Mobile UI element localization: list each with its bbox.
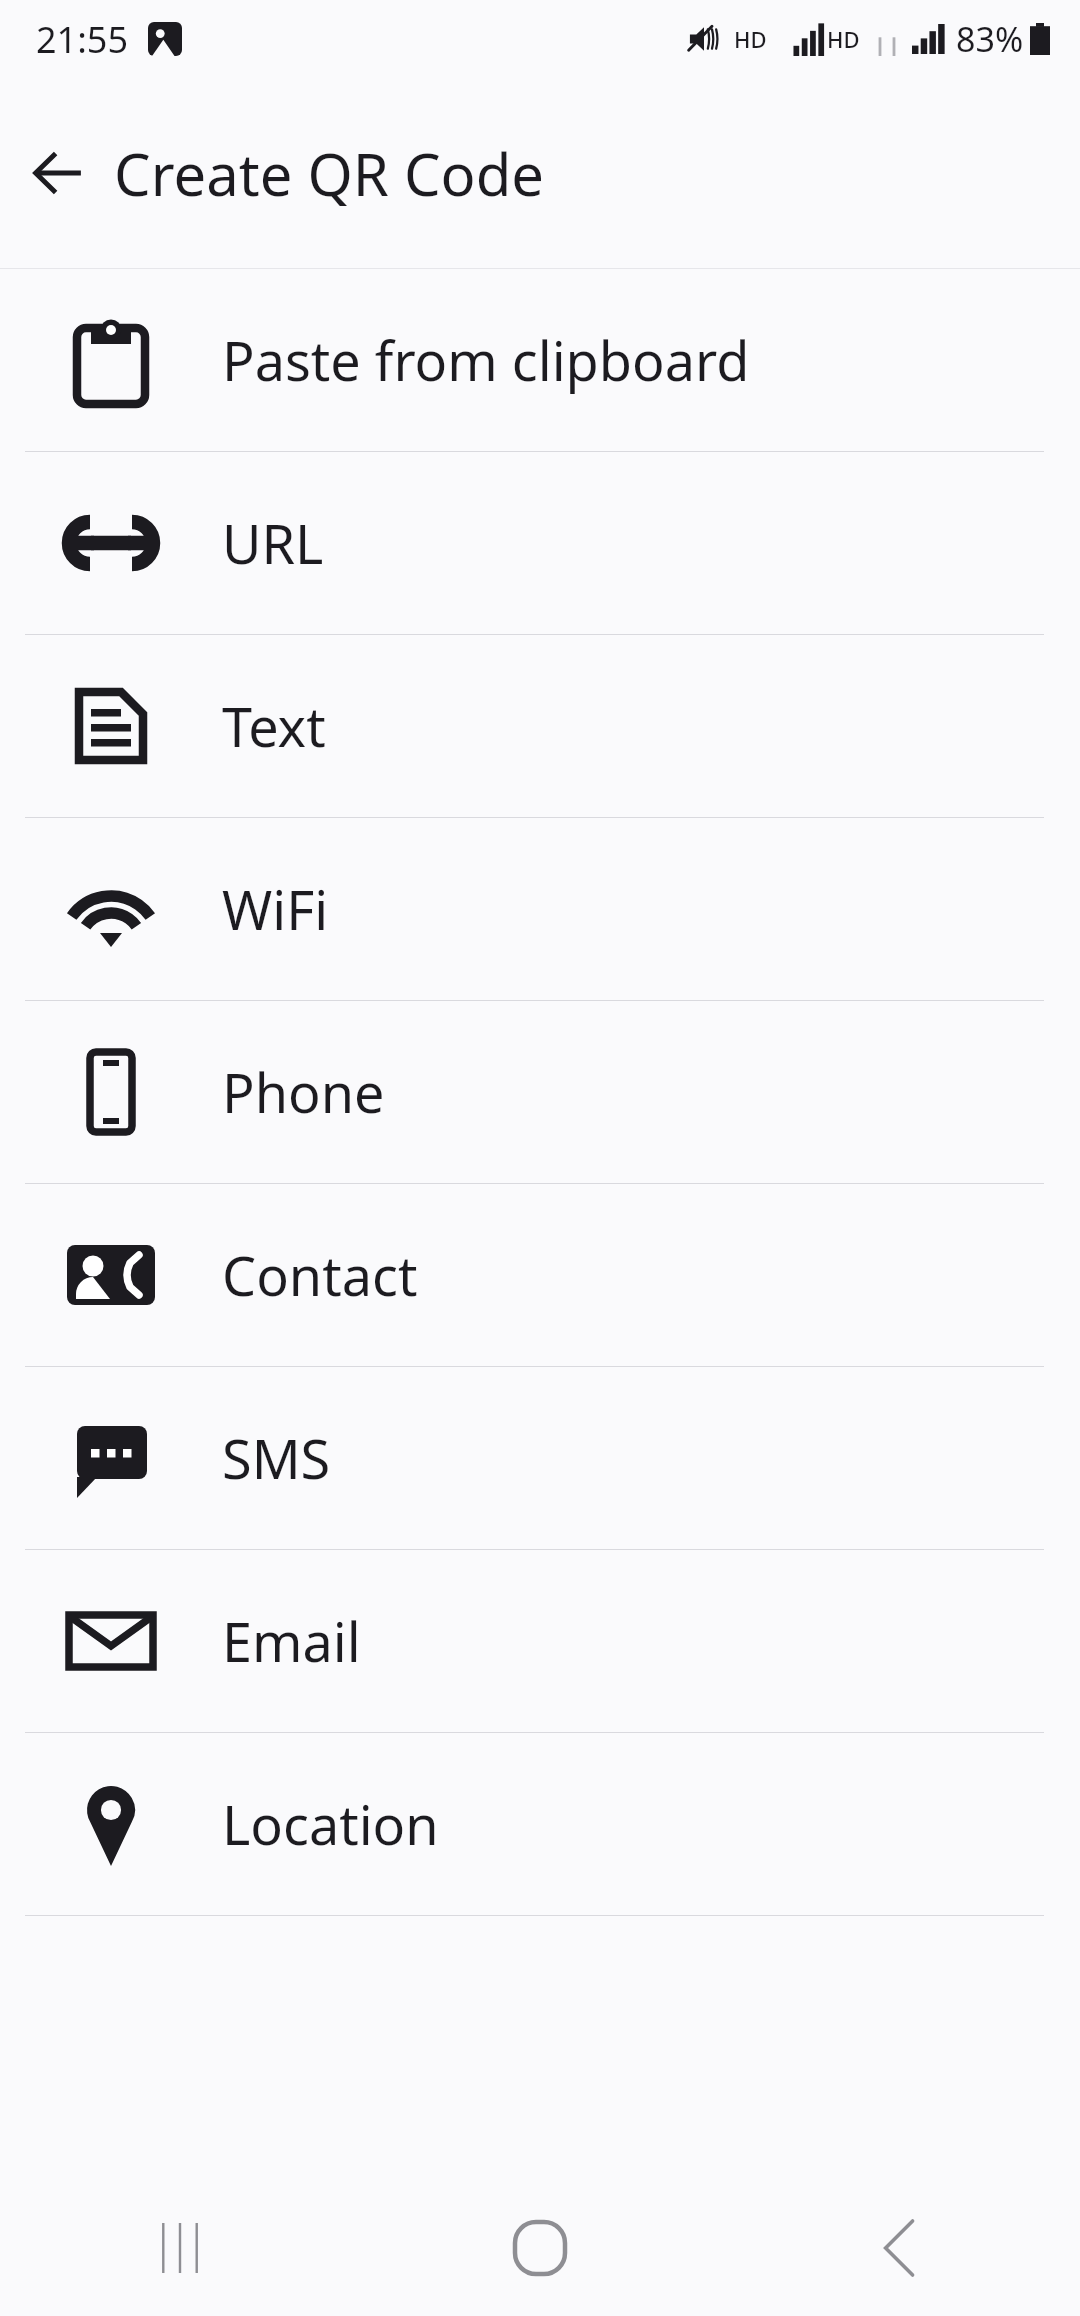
button[interactable]: Contact (0, 1184, 1080, 1366)
staticText: Text (222, 689, 326, 763)
staticText: Email (222, 1604, 361, 1678)
button[interactable]: Recents (0, 2180, 360, 2316)
button[interactable]: Home (360, 2180, 720, 2316)
button[interactable]: SMS (0, 1367, 1080, 1549)
staticText: 21:55 (36, 15, 129, 64)
staticText: Location (222, 1787, 439, 1861)
staticText: Paste from clipboard (222, 323, 750, 397)
staticText: Contact (222, 1238, 418, 1312)
button[interactable]: Text (0, 635, 1080, 817)
button[interactable]: Location (0, 1733, 1080, 1915)
button[interactable]: WiFi (0, 818, 1080, 1000)
staticText: URL (222, 506, 324, 580)
button[interactable]: Back (720, 2180, 1080, 2316)
staticText: Create QR Code (114, 134, 545, 213)
button[interactable]: Phone (0, 1001, 1080, 1183)
button[interactable]: URL (0, 452, 1080, 634)
staticText: HD (827, 24, 860, 54)
staticText: HD (734, 24, 767, 54)
staticText: 83% (956, 16, 1024, 62)
button[interactable]: Paste from clipboard (0, 269, 1080, 451)
staticText: WiFi (222, 872, 329, 946)
staticText: Phone (222, 1055, 385, 1129)
button[interactable]: Email (0, 1550, 1080, 1732)
staticText: SMS (222, 1421, 331, 1495)
button[interactable]: Back (20, 135, 96, 211)
